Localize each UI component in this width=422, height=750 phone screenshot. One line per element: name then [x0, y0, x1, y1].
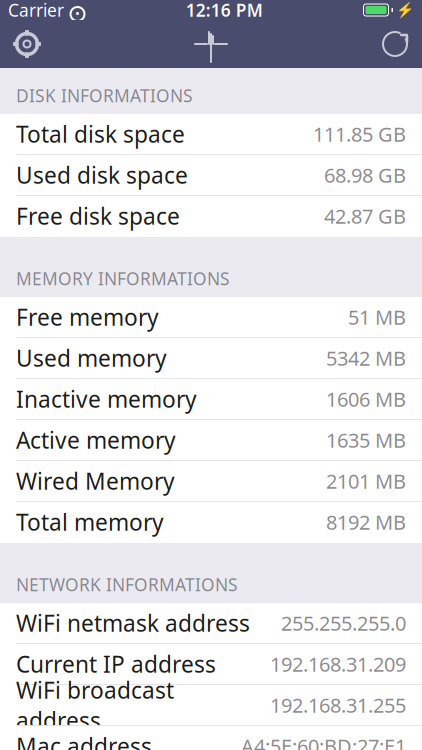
staticText: Mac address: [16, 731, 152, 750]
staticText: 2101 MB: [326, 468, 406, 494]
staticText: ⚡: [396, 2, 414, 18]
button[interactable]: Refresh: [368, 20, 422, 68]
staticText: 1606 MB: [326, 386, 406, 412]
staticText: MEMORY INFORMATIONS: [16, 267, 230, 290]
staticText: 12:16 PM: [186, 0, 263, 21]
staticText: 8192 MB: [326, 509, 406, 535]
staticText: Current IP address: [16, 649, 216, 679]
staticText: Carrier: [8, 0, 64, 21]
staticText: Inactive memory: [16, 384, 197, 414]
staticText: 255.255.255.0: [281, 610, 406, 636]
staticText: 192.168.31.209: [270, 651, 406, 677]
button[interactable]: Current IP address: [0, 644, 422, 685]
button[interactable]: Used disk space: [0, 155, 422, 196]
staticText: 111.85 GB: [313, 121, 406, 147]
button[interactable]: WiFi broadcast address: [0, 685, 422, 726]
staticText: 68.98 GB: [324, 162, 406, 188]
staticText: A4:5E:60:BD:27:E1: [241, 733, 406, 750]
staticText: 51 MB: [348, 304, 406, 330]
button[interactable]: Settings: [0, 20, 54, 68]
button[interactable]: Free disk space: [0, 196, 422, 237]
button[interactable]: Free memory: [0, 297, 422, 338]
button[interactable]: Active memory: [0, 420, 422, 461]
staticText: DISK INFORMATIONS: [16, 84, 193, 107]
staticText: Free memory: [16, 302, 159, 332]
staticText: Free disk space: [16, 201, 180, 231]
staticText: 5342 MB: [326, 345, 406, 371]
button[interactable]: Wired Memory: [0, 461, 422, 502]
staticText: Used memory: [16, 343, 167, 373]
button[interactable]: Total disk space: [0, 114, 422, 155]
staticText: Total memory: [16, 507, 164, 537]
staticText: 42.87 GB: [324, 203, 406, 229]
staticText: WiFi broadcast address: [16, 675, 174, 735]
button[interactable]: Used memory: [0, 338, 422, 379]
staticText: NETWORK INFORMATIONS: [16, 573, 238, 596]
staticText: Wired Memory: [16, 466, 175, 496]
staticText: Total disk space: [16, 119, 185, 149]
staticText: 192.168.31.255: [270, 692, 406, 718]
button[interactable]: WiFi netmask address: [0, 603, 422, 644]
button[interactable]: Mac address: [0, 726, 422, 750]
staticText: WiFi netmask address: [16, 608, 250, 638]
button[interactable]: Total memory: [0, 502, 422, 543]
staticText: Used disk space: [16, 160, 188, 190]
staticText: 1635 MB: [326, 427, 406, 453]
staticText: Active memory: [16, 425, 176, 455]
button[interactable]: Inactive memory: [0, 379, 422, 420]
